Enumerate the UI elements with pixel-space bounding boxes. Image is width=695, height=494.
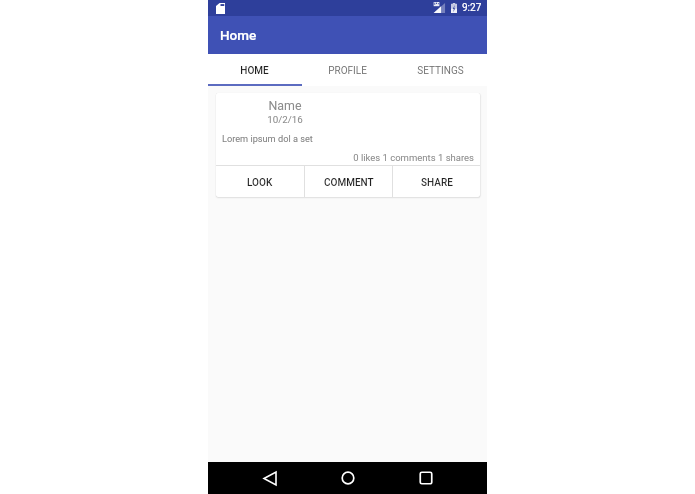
staticText: HOME — [240, 65, 269, 77]
button[interactable]: COMMENT — [305, 166, 392, 197]
button[interactable]: Back — [250, 462, 290, 494]
staticText: Lorem ipsum dol a set — [222, 133, 313, 144]
button[interactable]: SHARE — [393, 166, 480, 197]
staticText: 9:27 — [462, 2, 482, 14]
button[interactable]: Recent apps — [406, 462, 446, 494]
staticText: COMMENT — [324, 177, 374, 189]
button[interactable]: LOOK — [216, 166, 304, 197]
staticText: SHARE — [421, 177, 453, 189]
button[interactable]: Home — [328, 462, 368, 494]
staticText: 0 likes 1 comments 1 shares — [216, 152, 474, 163]
staticText: LOOK — [247, 177, 273, 189]
staticText: 10/2/16 — [267, 114, 303, 125]
staticText: SETTINGS — [417, 65, 464, 77]
button[interactable]: SETTINGS — [394, 54, 487, 86]
button[interactable]: PROFILE — [301, 54, 394, 86]
staticText: Home — [220, 27, 257, 43]
staticText: PROFILE — [328, 65, 367, 77]
staticText: Name — [268, 98, 302, 113]
button[interactable]: HOME — [208, 54, 301, 86]
